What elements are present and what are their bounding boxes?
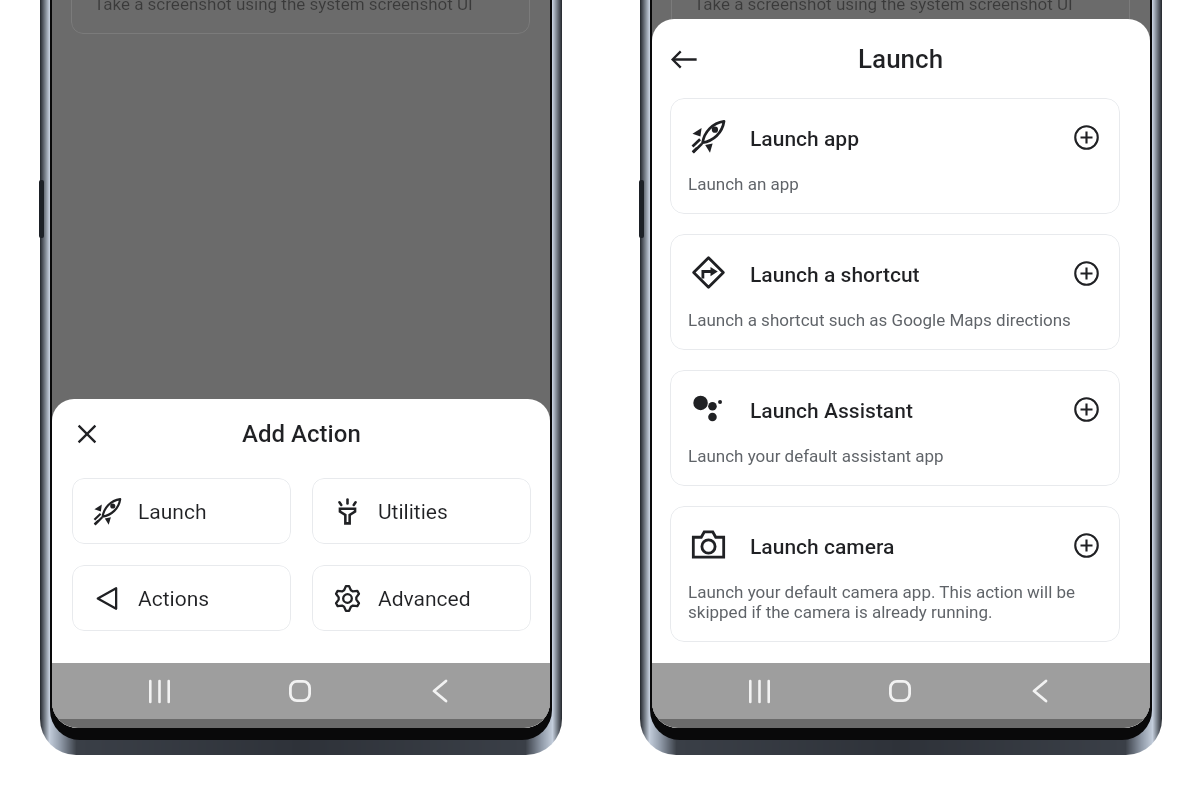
button[interactable]: Advanced bbox=[312, 565, 531, 631]
button[interactable]: Launch bbox=[72, 478, 291, 544]
staticText: Utilities bbox=[378, 500, 448, 525]
button[interactable]: Recents bbox=[720, 663, 800, 719]
button[interactable]: Launch camera bbox=[670, 506, 1120, 642]
staticText: Launch Assistant bbox=[750, 399, 1068, 424]
button[interactable]: Add Launch app bbox=[1070, 121, 1102, 153]
button[interactable]: Home bbox=[860, 663, 940, 719]
button[interactable]: Launch Assistant bbox=[670, 370, 1120, 486]
button[interactable]: Add Launch camera bbox=[1070, 529, 1102, 561]
button[interactable]: Take a screenshot using the system scree… bbox=[71, 0, 530, 34]
staticText: Launch a shortcut such as Google Maps di… bbox=[688, 310, 1071, 330]
staticText: Advanced bbox=[378, 587, 471, 612]
button[interactable]: Actions bbox=[72, 565, 291, 631]
button[interactable]: Launch app bbox=[670, 98, 1120, 214]
staticText: Launch an app bbox=[688, 174, 799, 194]
staticText: Add Action bbox=[242, 420, 361, 448]
staticText: Launch a shortcut bbox=[750, 263, 1068, 288]
button[interactable]: Utilities bbox=[312, 478, 531, 544]
staticText: Take a screenshot using the system scree… bbox=[94, 0, 473, 14]
button[interactable]: Recents bbox=[120, 663, 200, 719]
button[interactable]: Home bbox=[260, 663, 340, 719]
staticText: Launch your default assistant app bbox=[688, 446, 944, 466]
button[interactable]: Take a screenshot using the system scree… bbox=[671, 0, 1130, 34]
button[interactable]: Back bbox=[400, 663, 480, 719]
staticText: Launch your default camera app. This act… bbox=[688, 582, 1076, 622]
button[interactable]: Back bbox=[660, 35, 708, 83]
button[interactable]: Add Launch a shortcut bbox=[1070, 257, 1102, 289]
staticText: Launch bbox=[138, 500, 207, 525]
staticText: Take a screenshot using the system scree… bbox=[694, 0, 1073, 14]
button[interactable]: Add Launch Assistant bbox=[1070, 393, 1102, 425]
staticText: Launch camera bbox=[750, 535, 1068, 560]
button[interactable]: Close bbox=[63, 410, 111, 458]
button[interactable]: Back bbox=[1000, 663, 1080, 719]
staticText: Launch bbox=[858, 44, 944, 74]
button[interactable]: Launch a shortcut bbox=[670, 234, 1120, 350]
staticText: Launch app bbox=[750, 127, 1068, 152]
staticText: Actions bbox=[138, 587, 210, 612]
